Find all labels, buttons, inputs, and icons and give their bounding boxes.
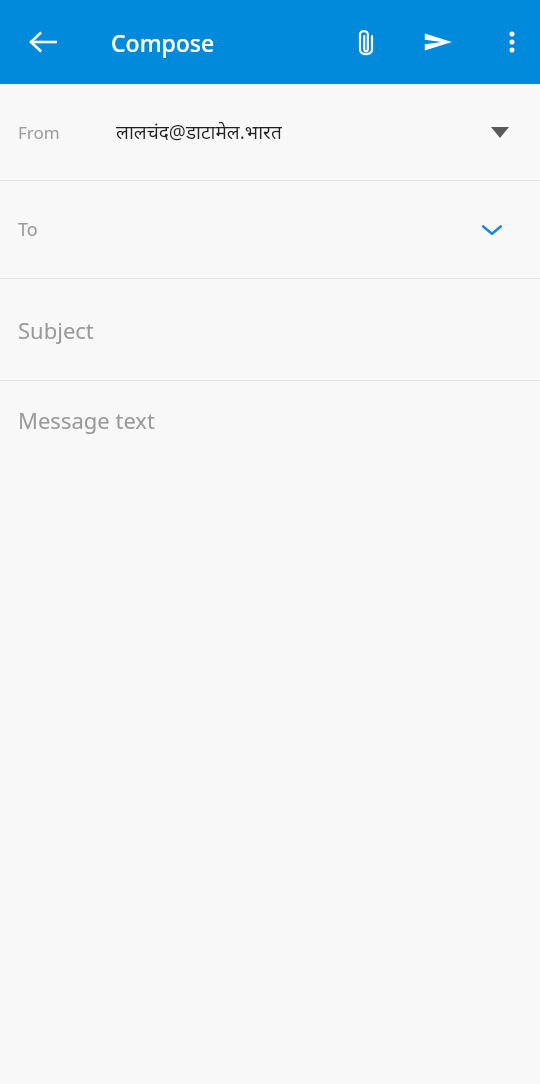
staticText: Compose xyxy=(111,27,215,58)
button[interactable]: From xyxy=(0,84,540,180)
button[interactable]: Show Cc and Bcc xyxy=(475,213,509,247)
button[interactable]: To xyxy=(0,181,540,278)
staticText: From xyxy=(18,121,60,144)
button[interactable]: Subject xyxy=(0,279,540,380)
button[interactable]: Send xyxy=(414,18,462,66)
button[interactable]: Back xyxy=(19,18,67,66)
staticText: Subject xyxy=(18,315,94,345)
button[interactable]: Message text xyxy=(0,381,540,1084)
button[interactable]: More options xyxy=(488,18,536,66)
staticText: लालचंद@डाटामेल.भारत xyxy=(116,119,282,145)
button[interactable]: Attach file xyxy=(342,18,390,66)
staticText: Message text xyxy=(18,405,155,435)
staticText: To xyxy=(18,217,38,242)
